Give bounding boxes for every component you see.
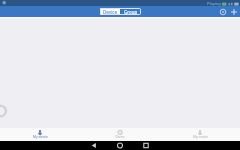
button[interactable]: Scan <box>218 7 228 17</box>
button[interactable]: Demo <box>80 128 160 141</box>
staticText: Playing <box>207 1 221 6</box>
button[interactable]: My device <box>0 128 80 141</box>
staticText: My center <box>193 135 208 139</box>
staticText: Demo <box>115 135 125 139</box>
staticText: Device <box>103 9 118 15</box>
staticText: My device <box>33 135 48 139</box>
button[interactable]: Add <box>229 7 239 17</box>
button[interactable]: Recent apps <box>141 141 151 150</box>
button[interactable]: Group <box>120 8 141 15</box>
button[interactable]: My center <box>160 128 240 141</box>
button[interactable]: Home <box>115 141 125 150</box>
button[interactable]: Device <box>100 8 120 15</box>
button[interactable]: Back <box>89 141 99 150</box>
staticText: Group <box>124 9 138 15</box>
